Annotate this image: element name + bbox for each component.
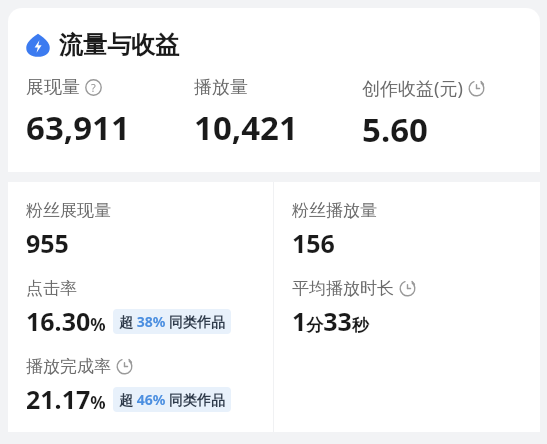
staticText: 流量与收益 [59, 30, 179, 60]
button[interactable]: 播放量 [194, 76, 362, 150]
button[interactable]: 粉丝展现量 [8, 182, 273, 260]
staticText: 播放量 [194, 76, 248, 99]
staticText: 播放完成率 [26, 356, 111, 377]
staticText: 粉丝展现量 [26, 200, 111, 221]
button[interactable]: 展现量 [26, 76, 194, 150]
staticText: 156 [292, 226, 335, 260]
other: 说明 [85, 79, 102, 96]
staticText: ? [91, 80, 96, 95]
staticText: 粉丝播放量 [292, 200, 377, 221]
staticText: 5.60 [362, 107, 428, 152]
button[interactable]: 平均播放时长 [274, 260, 540, 338]
button[interactable]: 粉丝播放量 [274, 182, 540, 260]
button[interactable]: 流量与收益 [8, 8, 540, 64]
staticText: 21.17% [26, 382, 106, 416]
staticText: 超 46% 同类作品 [119, 390, 225, 409]
button[interactable]: 播放完成率 [8, 338, 273, 416]
staticText: 16.30% [26, 304, 106, 338]
staticText: 点击率 [26, 278, 77, 299]
staticText: 创作收益(元) [362, 76, 463, 101]
staticText: 10,421 [194, 105, 298, 150]
button[interactable]: 点击率 [8, 260, 273, 338]
staticText: 展现量 [26, 76, 80, 99]
staticText: 955 [26, 226, 69, 260]
other: 时间说明 [468, 80, 485, 97]
staticText: 超 38% 同类作品 [119, 312, 225, 331]
staticText: 1分33秒 [292, 304, 369, 338]
button[interactable]: 创作收益(元) [362, 76, 530, 152]
other: 时间说明 [116, 358, 133, 375]
other: 时间说明 [399, 280, 416, 297]
staticText: 平均播放时长 [292, 278, 394, 299]
staticText: 63,911 [26, 105, 130, 150]
